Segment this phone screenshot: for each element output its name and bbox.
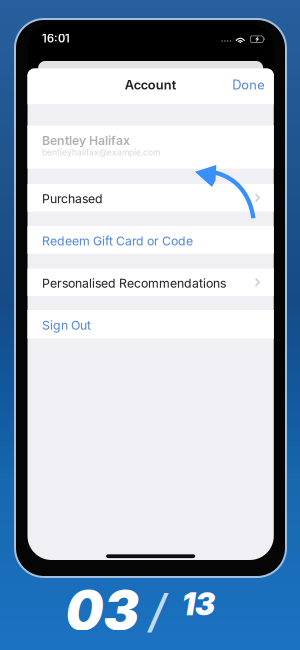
staticText: Personalised Recommendations (42, 276, 226, 291)
staticText: Redeem Gift Card or Code (42, 233, 193, 248)
staticText: bentleyhalifax@example.com (42, 147, 160, 157)
staticText: Done (232, 77, 264, 93)
button[interactable]: Personalised Recommendations (27, 268, 274, 296)
staticText: 03 (65, 578, 139, 642)
staticText: Purchased (42, 191, 103, 206)
button[interactable]: Sign Out (27, 310, 274, 338)
button[interactable]: Bentley Halifax (27, 125, 274, 168)
staticText: 16:01 (42, 32, 70, 45)
staticText: 13 (182, 585, 215, 622)
button[interactable]: Done (220, 78, 264, 92)
staticText: Account (125, 77, 177, 93)
staticText: Bentley Halifax (42, 133, 130, 148)
button[interactable]: Redeem Gift Card or Code (27, 226, 274, 254)
staticText: Sign Out (42, 318, 91, 333)
button[interactable]: Purchased (27, 184, 274, 211)
staticText: / (149, 584, 166, 638)
